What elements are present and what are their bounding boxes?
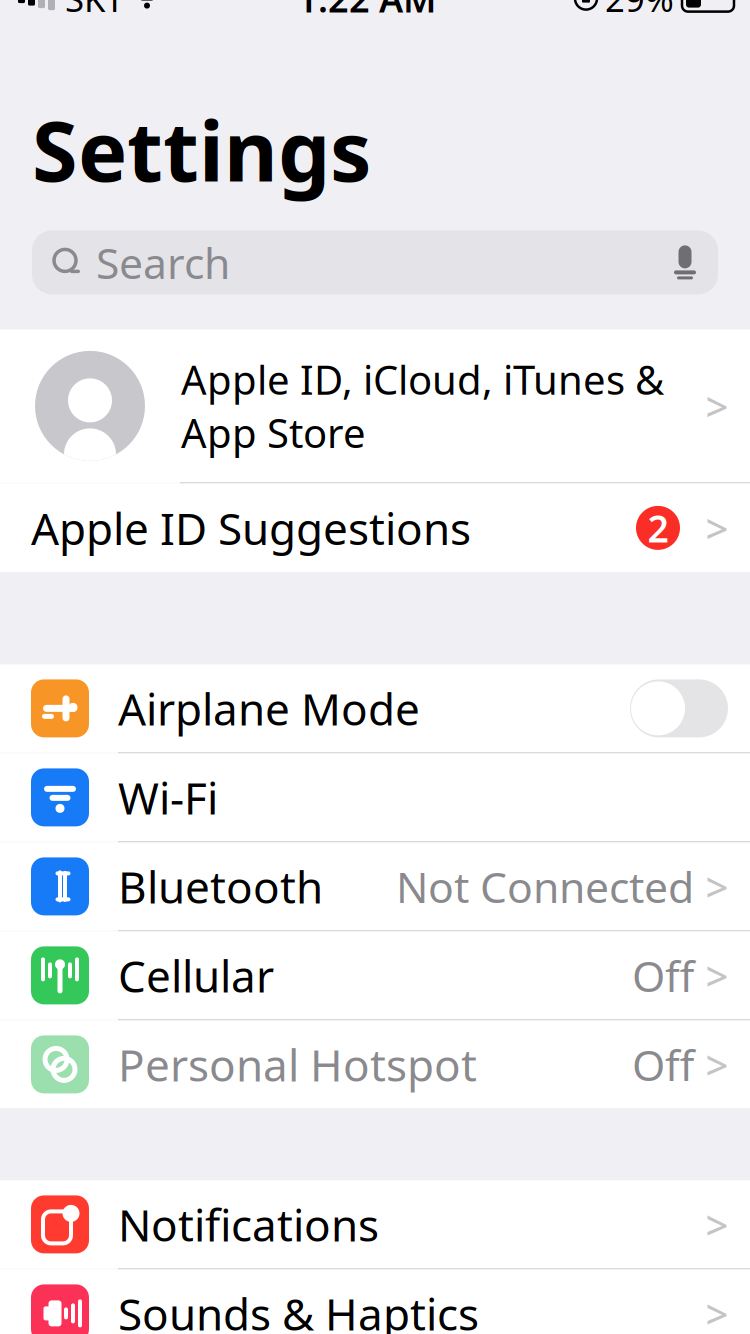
staticText: Search (96, 234, 230, 291)
button[interactable]: Search (32, 230, 718, 294)
staticText: > (705, 860, 728, 913)
staticText: Off (632, 947, 694, 1004)
button[interactable]: Notifications (0, 1180, 750, 1268)
staticText: Wi-Fi (118, 768, 218, 827)
staticText: Apple ID, iCloud, iTunes & App Store (181, 353, 664, 459)
button[interactable]: Bluetooth (0, 842, 750, 930)
button[interactable]: Sounds & Haptics (0, 1269, 750, 1334)
button[interactable]: Wi-Fi (0, 753, 750, 841)
staticText: Not Connected (396, 858, 694, 915)
staticText: > (705, 949, 728, 1002)
staticText: 2 (647, 503, 668, 553)
staticText: Off (632, 1036, 694, 1093)
staticText: Personal Hotspot (118, 1035, 477, 1094)
staticText: > (705, 1038, 728, 1091)
staticText: > (705, 1287, 728, 1334)
staticText: Sounds & Haptics (118, 1284, 479, 1334)
staticText: > (705, 501, 728, 554)
staticText: > (705, 1198, 728, 1251)
staticText: Notifications (118, 1195, 379, 1254)
button[interactable]: Personal Hotspot (0, 1020, 750, 1108)
staticText: Apple ID Suggestions (31, 499, 471, 557)
staticText: Settings (32, 95, 371, 204)
button[interactable]: Airplane Mode (0, 664, 750, 752)
button[interactable]: Apple ID, iCloud, iTunes & App Store (0, 329, 750, 482)
staticText: SKT (65, 0, 124, 22)
staticText: Bluetooth (118, 857, 323, 916)
button[interactable]: Apple ID Suggestions (0, 483, 750, 572)
button[interactable]: Cellular (0, 931, 750, 1019)
staticText: 1:22 AM (297, 0, 436, 22)
staticText: > (705, 379, 728, 432)
staticText: 29% (605, 0, 674, 22)
staticText: Cellular (118, 946, 274, 1005)
staticText: Airplane Mode (118, 679, 420, 738)
